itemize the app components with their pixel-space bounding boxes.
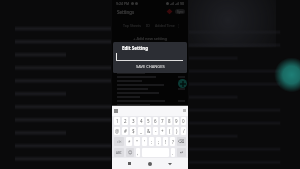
button[interactable]: Sync [175, 9, 185, 14]
button[interactable]: # [122, 127, 128, 135]
button[interactable]: 3 [130, 117, 136, 125]
staticText: ↵ [180, 150, 184, 155]
staticText: ; [158, 139, 160, 145]
staticText: 5 [147, 118, 150, 124]
button[interactable]: 8 [167, 117, 172, 125]
staticText: ABC [116, 151, 122, 155]
staticText: Top Sheets [123, 23, 141, 28]
staticText: 90 [180, 1, 185, 6]
button[interactable]: _ [138, 127, 144, 135]
button[interactable]: 4 [138, 117, 144, 125]
staticText: 2 [124, 118, 127, 124]
button[interactable]: 5 [146, 117, 151, 125]
staticText: _ [140, 128, 142, 134]
button[interactable]: ABC [114, 148, 124, 157]
staticText: ID [146, 23, 150, 28]
button[interactable]: =\< [114, 137, 124, 146]
staticText: ☺ [128, 150, 133, 155]
staticText: # [124, 128, 127, 134]
staticText: + [161, 128, 164, 134]
staticText: SAVE CHANGES [136, 64, 165, 69]
button[interactable]: ☺ [126, 148, 134, 157]
button[interactable]: . [171, 148, 175, 157]
button[interactable]: Home [148, 162, 152, 166]
staticText: / [183, 128, 185, 134]
staticText: Edit Setting [122, 45, 149, 51]
staticText: $ [132, 128, 135, 134]
button[interactable]: : [149, 137, 154, 146]
staticText: Settings [117, 9, 135, 15]
staticText: 9 [175, 118, 178, 124]
button[interactable]: Add [178, 79, 187, 88]
button[interactable]: @ [114, 127, 120, 135]
staticText: 4 [140, 118, 143, 124]
staticText: ⌫ [178, 139, 185, 144]
button[interactable]: + [160, 127, 165, 135]
button[interactable]: " [134, 137, 140, 146]
button[interactable]: 9 [174, 117, 179, 125]
button[interactable]: $ [130, 127, 136, 135]
button[interactable]: Record [166, 8, 173, 15]
button[interactable]: 1 [114, 117, 120, 125]
staticText: 1 [116, 118, 119, 124]
button[interactable]: ; [156, 137, 161, 146]
button[interactable]: / [181, 127, 186, 135]
button[interactable]: SAVE CHANGES [113, 62, 187, 70]
button[interactable]: , [136, 148, 140, 157]
staticText: ⋮ [177, 24, 181, 28]
button[interactable]: ( [167, 127, 172, 135]
staticText: ( [169, 128, 171, 134]
button[interactable]: 6 [153, 117, 158, 125]
staticText: Added Time [155, 23, 175, 28]
button[interactable]: ! [163, 137, 168, 146]
staticText: ' [144, 139, 146, 145]
button[interactable]: & [146, 127, 151, 135]
staticText: " [136, 139, 138, 145]
button[interactable]: * [126, 137, 132, 146]
staticText: =\< [117, 140, 122, 144]
staticText: : [151, 139, 153, 145]
staticText: * [128, 139, 131, 145]
button[interactable]: ? [170, 137, 175, 146]
staticText: @ [115, 128, 120, 134]
button[interactable]: 7 [160, 117, 165, 125]
staticText: 6 [154, 118, 157, 124]
staticText: , [137, 150, 139, 156]
button[interactable]: ⌫ [177, 137, 186, 146]
button[interactable]: 0 [181, 117, 186, 125]
button[interactable]: Back [168, 162, 172, 166]
staticText: 0 [182, 118, 185, 124]
staticText: 9:24 PM [116, 1, 130, 6]
staticText: - [155, 128, 157, 134]
staticText: . [172, 150, 174, 156]
staticText: 3 [132, 118, 135, 124]
staticText: ! [165, 139, 167, 145]
staticText: 8 [168, 118, 171, 124]
staticText: 7 [161, 118, 164, 124]
staticText: Sync [177, 10, 184, 14]
staticText: ? [172, 139, 174, 145]
staticText: + Add new setting [112, 36, 188, 41]
button[interactable]: ' [142, 137, 147, 146]
button[interactable]: ↵ [177, 148, 186, 157]
button[interactable]: - [153, 127, 158, 135]
button[interactable]: 2 [122, 117, 128, 125]
button[interactable]: ) [174, 127, 179, 135]
staticText: ) [176, 128, 178, 134]
staticText: & [147, 128, 151, 134]
